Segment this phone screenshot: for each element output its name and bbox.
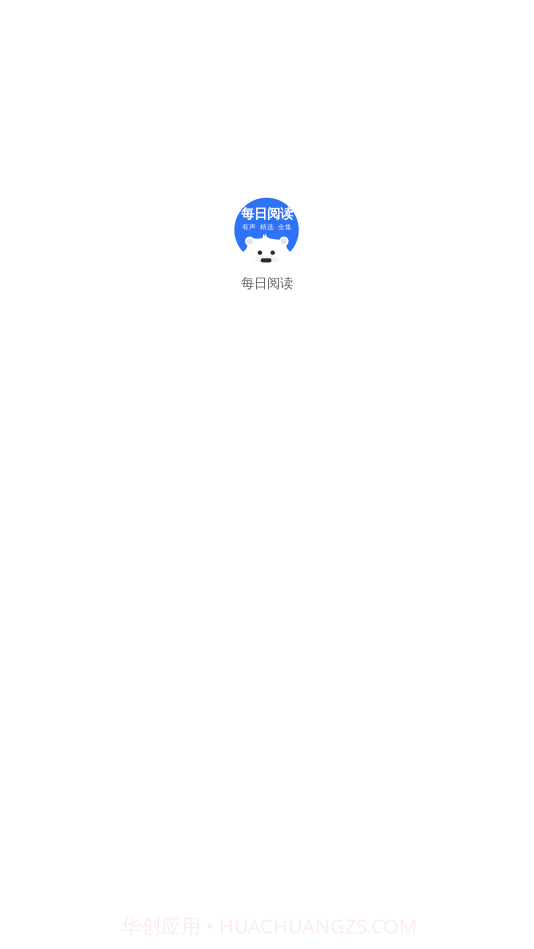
staticText: 每日阅读: [241, 206, 293, 222]
staticText: 每日阅读: [241, 275, 293, 291]
staticText: 华创应用 • HUACHUANGZS.COM: [121, 912, 417, 939]
staticText: 有声 精选 全集: [242, 223, 292, 231]
